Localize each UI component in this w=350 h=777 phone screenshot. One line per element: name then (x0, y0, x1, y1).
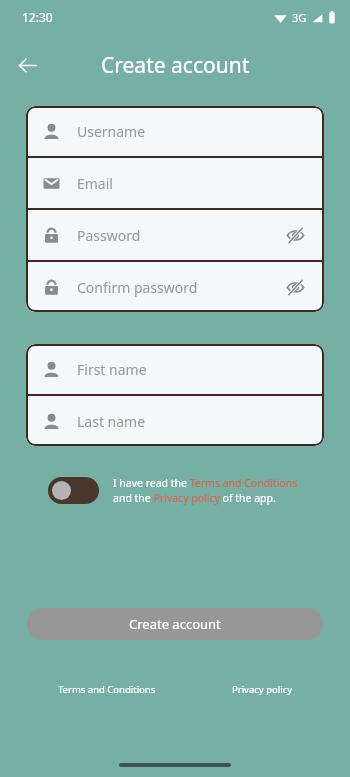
staticText: Password (77, 226, 141, 245)
button[interactable]: Terms and Conditions (58, 683, 156, 696)
button[interactable]: Confirm password (26, 262, 324, 312)
button[interactable]: Accept terms toggle (48, 477, 99, 504)
button[interactable]: Privacy policy (232, 683, 293, 696)
staticText: I have read the Terms and Conditions and… (113, 476, 298, 505)
staticText: Create account (101, 51, 250, 80)
staticText: Create account (129, 615, 221, 633)
staticText: Terms and Conditions (58, 683, 156, 696)
staticText: Email (77, 174, 113, 193)
staticText: Last name (77, 412, 146, 431)
staticText: First name (77, 360, 147, 379)
button[interactable]: Email (26, 158, 324, 208)
button[interactable]: Username (26, 106, 324, 156)
staticText: Username (77, 122, 146, 141)
button[interactable]: First name (26, 344, 324, 394)
button[interactable]: Password (26, 210, 324, 260)
button[interactable]: Show password (282, 222, 308, 248)
button[interactable]: Last name (26, 396, 324, 446)
staticText: Privacy policy (232, 683, 293, 696)
staticText: 12:30 (22, 9, 53, 25)
button[interactable]: Create account (27, 608, 323, 640)
button[interactable]: Show password (282, 274, 308, 300)
button[interactable]: Back (10, 48, 44, 82)
staticText: 3G (292, 10, 307, 25)
staticText: Confirm password (77, 278, 198, 297)
